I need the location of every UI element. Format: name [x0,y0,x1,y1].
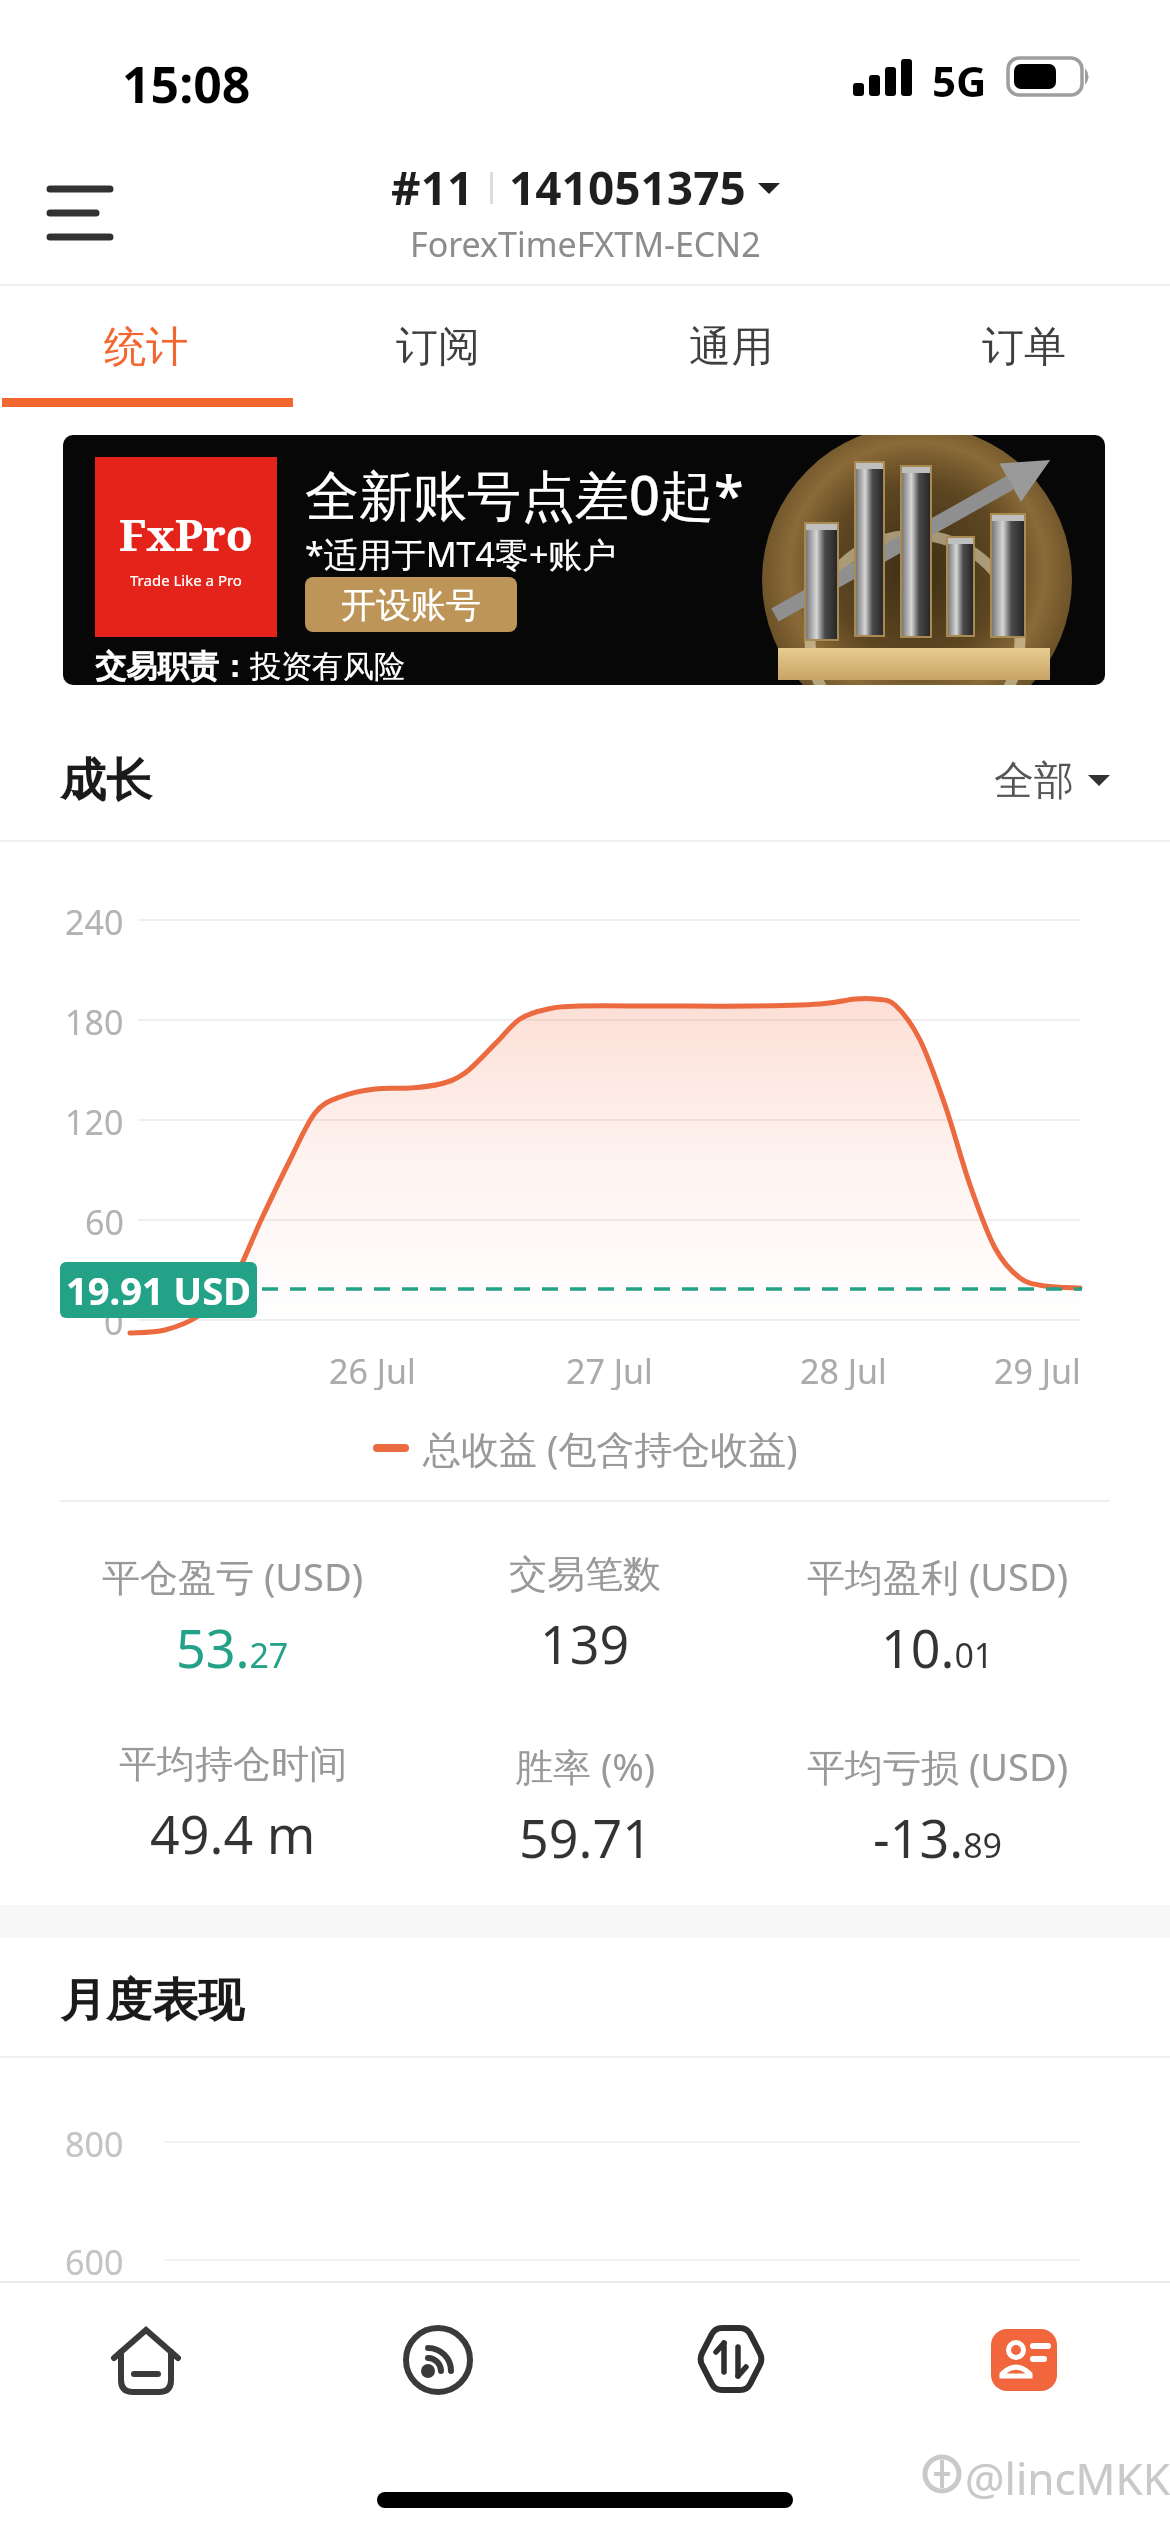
staticText: 28 Jul [800,1348,887,1390]
staticText: 15:08 [122,50,251,118]
staticText: 53.27 [176,1612,289,1683]
staticText: 全新账号点差0起* [305,457,744,531]
staticText: 0 [104,1299,124,1341]
button[interactable] [584,2283,877,2453]
staticText: 19.91 USD [66,1264,251,1316]
staticText: 月度表现 [60,1972,244,2030]
staticText: 平仓盈亏 (USD) [102,1550,364,1602]
staticText: 10.01 [881,1612,994,1683]
staticText: 交易职责：投资有风险 [95,647,405,685]
staticText: 全部 [994,755,1074,805]
button[interactable]: 订阅 [292,286,584,408]
staticText: #11 [391,156,474,219]
staticText: @lincMKK [965,2448,1170,2508]
staticText: 29 Jul [994,1348,1081,1390]
staticText: -13.89 [873,1802,1003,1873]
staticText: 胜率 (%) [515,1740,656,1792]
staticText: 240 [65,899,124,941]
button[interactable]: 开设账号 [305,577,517,632]
staticText: Trade Like a Pro [130,570,242,590]
staticText: 成长 [60,752,152,810]
button[interactable] [0,2283,292,2453]
staticText: 60 [85,1199,124,1241]
staticText: *适用于MT4零+账户 [305,531,617,577]
staticText: 订阅 [396,321,480,374]
staticText: 26 Jul [329,1348,416,1390]
staticText: 141051375 [509,156,746,219]
staticText: 139 [540,1608,630,1679]
button[interactable]: 统计 [0,286,292,408]
staticText: 59.71 [519,1802,652,1873]
staticText: FxPro [119,504,253,564]
button[interactable]: #11 [0,156,1170,267]
button[interactable] [292,2283,584,2453]
staticText: 订单 [982,321,1066,374]
staticText: 27 Jul [566,1348,653,1390]
button[interactable]: 全部 [960,752,1110,808]
staticText: 统计 [104,321,188,374]
button[interactable] [36,172,126,262]
button[interactable] [877,2283,1170,2453]
staticText: 交易笔数 [509,1550,661,1598]
staticText: 180 [65,999,124,1041]
staticText: 总收益 (包含持仓收益) [423,1422,798,1474]
staticText: 开设账号 [341,583,481,627]
staticText: 49.4 m [150,1798,316,1869]
staticText: 平均持仓时间 [119,1740,347,1788]
staticText: 800 [65,2121,124,2163]
staticText: 600 [65,2239,124,2281]
button[interactable]: FxPro [63,435,1105,685]
staticText: 通用 [689,321,773,374]
staticText: 平均盈利 (USD) [807,1550,1069,1602]
button[interactable]: 通用 [584,286,877,408]
staticText: 120 [65,1099,124,1141]
staticText: 平均亏损 (USD) [807,1740,1069,1792]
button[interactable]: 订单 [877,286,1170,408]
staticText: ForexTimeFXTM-ECN2 [410,221,761,267]
staticText: 5G [932,52,987,109]
